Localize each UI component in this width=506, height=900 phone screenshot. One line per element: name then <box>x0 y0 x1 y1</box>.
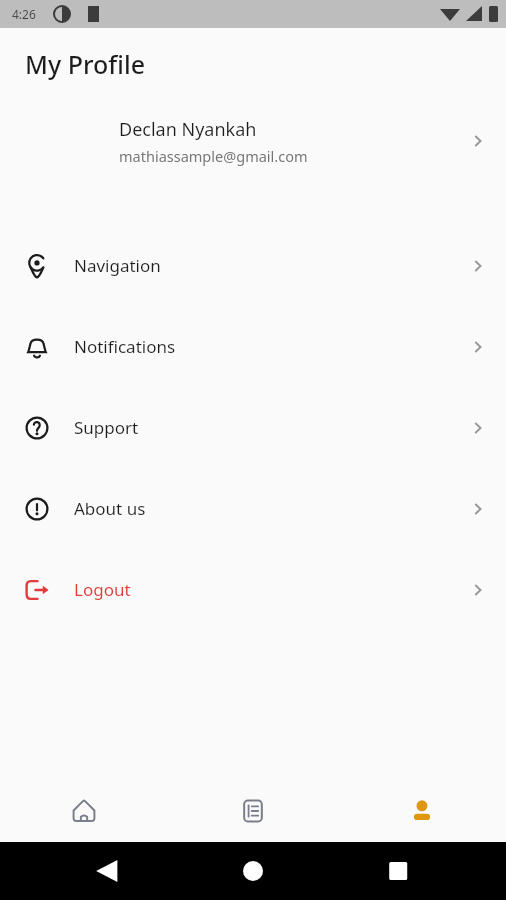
staticText: Declan Nyankah <box>119 117 257 142</box>
button[interactable]: Home <box>0 780 168 842</box>
button[interactable]: Logout <box>0 549 506 630</box>
staticText: Logout <box>74 578 450 601</box>
button[interactable]: Navigation <box>0 225 506 306</box>
staticText: My Profile <box>25 47 146 81</box>
button[interactable]: Notifications <box>0 306 506 387</box>
staticText: Notifications <box>74 335 450 358</box>
button[interactable]: Profile <box>337 780 506 842</box>
button[interactable]: Orders <box>168 780 337 842</box>
staticText: mathiassample@gmail.com <box>119 146 308 166</box>
button[interactable]: Declan Nyankah <box>0 100 506 182</box>
button[interactable]: Support <box>0 387 506 468</box>
staticText: Navigation <box>74 254 450 277</box>
staticText: 4:26 <box>12 6 36 22</box>
staticText: About us <box>74 497 450 520</box>
button[interactable]: About us <box>0 468 506 549</box>
staticText: Support <box>74 416 450 439</box>
